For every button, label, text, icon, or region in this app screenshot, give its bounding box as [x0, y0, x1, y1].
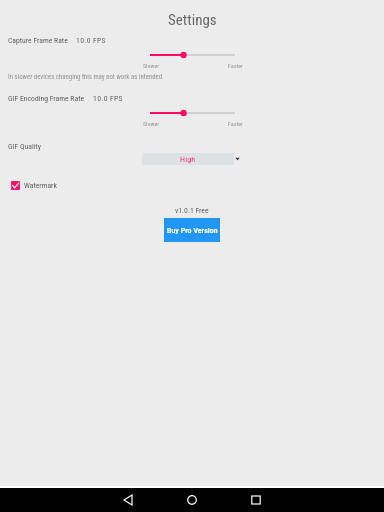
staticText: Slower: [143, 62, 160, 69]
staticText: Settings: [168, 11, 217, 29]
staticText: 10.0 FPS: [76, 36, 106, 45]
button[interactable]: Buy Pro Version: [164, 218, 220, 242]
staticText: GIF Encoding Frame Rate: [8, 94, 85, 103]
button[interactable]: Recent apps: [224, 488, 288, 512]
staticText: v1.0.1 Free: [175, 206, 209, 215]
staticText: GIF Quality: [8, 142, 41, 151]
staticText: Buy Pro Version: [167, 226, 218, 235]
staticText: Faster: [228, 120, 243, 127]
button[interactable]: High: [142, 153, 240, 165]
staticText: In slower devices changing this may not …: [8, 73, 163, 81]
staticText: Faster: [228, 62, 243, 69]
button[interactable]: Home: [160, 488, 224, 512]
staticText: 10.0 FPS: [93, 94, 123, 103]
button[interactable]: Watermark: [10, 179, 57, 192]
staticText: Capture Frame Rate: [8, 36, 68, 45]
staticText: Watermark: [24, 181, 57, 190]
staticText: Slower: [143, 120, 160, 127]
button[interactable]: Back: [96, 488, 160, 512]
staticText: High: [180, 155, 196, 164]
